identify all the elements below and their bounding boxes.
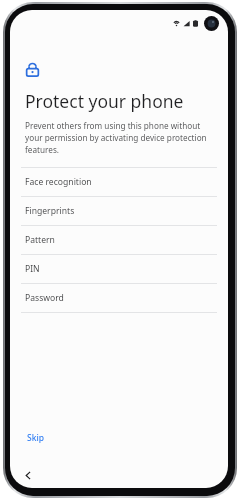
staticText: Protect your phone: [25, 89, 184, 113]
staticText: Prevent others from using this phone wit…: [25, 120, 214, 155]
button[interactable]: Back: [18, 465, 38, 485]
staticText: Fingerprints: [25, 205, 75, 217]
button[interactable]: Face recognition: [10, 168, 228, 196]
button[interactable]: Password: [10, 284, 228, 312]
staticText: Skip: [27, 432, 44, 444]
button[interactable]: PIN: [10, 255, 228, 283]
button[interactable]: Pattern: [10, 226, 228, 254]
staticText: PIN: [25, 263, 40, 275]
staticText: Face recognition: [25, 176, 92, 188]
button[interactable]: Fingerprints: [10, 197, 228, 225]
staticText: Password: [25, 292, 64, 304]
button[interactable]: Skip: [19, 427, 52, 449]
staticText: Pattern: [25, 234, 55, 246]
